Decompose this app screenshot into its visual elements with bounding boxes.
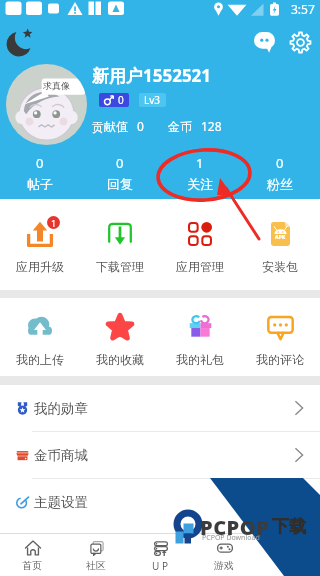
staticText: 求真像 bbox=[43, 80, 70, 91]
button[interactable]: 社区 bbox=[64, 534, 128, 576]
staticText: 关注 bbox=[187, 176, 213, 192]
button[interactable]: APK bbox=[240, 199, 320, 290]
staticText: 安装包 bbox=[262, 259, 298, 274]
button[interactable]: Night mode bbox=[3, 24, 39, 60]
staticText: 1 bbox=[196, 154, 204, 172]
button[interactable]: 游戏 bbox=[192, 534, 256, 576]
staticText: 下载管理 bbox=[96, 259, 144, 274]
button[interactable]: Messages bbox=[246, 24, 282, 60]
staticText: 社区 bbox=[86, 559, 106, 572]
staticText: 我的勋章 bbox=[34, 400, 88, 417]
staticText: PCPOP bbox=[200, 514, 270, 541]
staticText: 回复 bbox=[107, 176, 133, 192]
button[interactable]: 我的礼包 bbox=[160, 298, 240, 376]
staticText: 游戏 bbox=[214, 559, 234, 572]
button[interactable]: 我的评论 bbox=[240, 298, 320, 376]
button[interactable]: 我的上传 bbox=[0, 298, 80, 376]
staticText: 128 bbox=[201, 118, 222, 134]
staticText: PCPOP Download bbox=[202, 533, 260, 543]
button[interactable]: 我的收藏 bbox=[80, 298, 160, 376]
button[interactable]: Avatar bbox=[6, 64, 87, 145]
staticText: 首页 bbox=[22, 559, 42, 572]
staticText: 0 bbox=[276, 154, 284, 172]
button[interactable]: 下载管理 bbox=[80, 199, 160, 290]
staticText: U P bbox=[152, 559, 168, 573]
staticText: 0 bbox=[36, 154, 44, 172]
button[interactable]: 主题设置 bbox=[0, 479, 320, 525]
button[interactable]: 1 bbox=[160, 147, 240, 196]
staticText: 我的礼包 bbox=[176, 352, 224, 367]
button[interactable]: 应用管理 bbox=[160, 199, 240, 290]
staticText: 我的评论 bbox=[256, 352, 304, 367]
button[interactable]: 0 bbox=[0, 147, 80, 196]
staticText: 1 bbox=[51, 217, 57, 229]
staticText: APK bbox=[275, 234, 286, 241]
staticText: 贡献值 bbox=[92, 119, 128, 134]
staticText: 0 bbox=[118, 93, 124, 107]
button[interactable]: Settings bbox=[282, 24, 318, 60]
staticText: 金币商城 bbox=[34, 447, 88, 464]
staticText: 我的收藏 bbox=[96, 352, 144, 367]
staticText: 0 bbox=[116, 154, 124, 172]
staticText: 下载 bbox=[272, 516, 306, 537]
staticText: 我的上传 bbox=[16, 352, 64, 367]
button[interactable]: 首页 bbox=[0, 534, 64, 576]
staticText: 新用户1552521 bbox=[92, 64, 212, 87]
staticText: 主题设置 bbox=[34, 494, 88, 511]
staticText: 帖子 bbox=[27, 176, 53, 192]
button[interactable]: 金币商城 bbox=[0, 432, 320, 478]
staticText: 金币 bbox=[168, 119, 192, 134]
staticText: 我的 bbox=[278, 559, 298, 572]
button[interactable]: 0 bbox=[80, 147, 160, 196]
button[interactable]: 我的 bbox=[256, 534, 320, 576]
staticText: 3:57 bbox=[291, 1, 315, 17]
staticText: 0 bbox=[137, 118, 144, 134]
button[interactable]: 我的勋章 bbox=[0, 385, 320, 431]
staticText: Lv3 bbox=[144, 93, 161, 107]
button[interactable]: 0 bbox=[240, 147, 320, 196]
button[interactable]: U P bbox=[128, 534, 192, 576]
staticText: 粉丝 bbox=[267, 176, 293, 192]
staticText: 应用管理 bbox=[176, 259, 224, 274]
staticText: 应用升级 bbox=[16, 259, 64, 274]
button[interactable]: 1 bbox=[0, 199, 80, 290]
